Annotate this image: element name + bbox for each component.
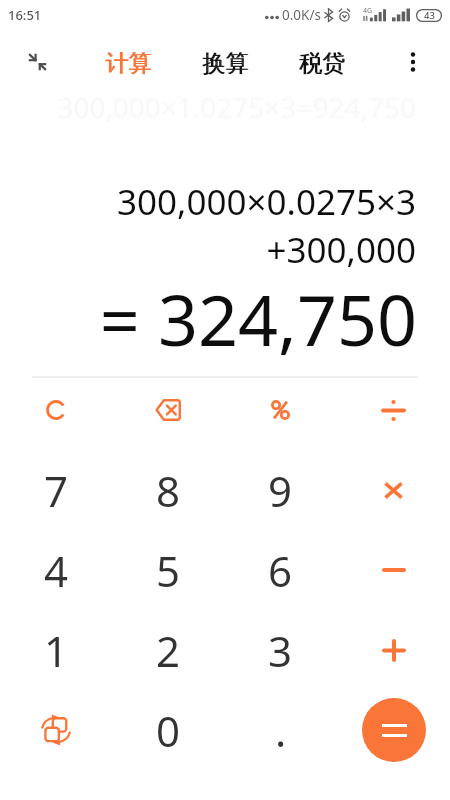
button[interactable]: 2: [112, 610, 224, 690]
staticText: 0.0K/s: [282, 6, 321, 24]
button[interactable]: Equals: [337, 690, 450, 770]
staticText: 换算: [202, 49, 248, 78]
staticText: 43: [424, 9, 435, 22]
staticText: 4G: [363, 6, 373, 16]
button[interactable]: 6: [224, 530, 337, 610]
staticText: = 324,750: [0, 271, 417, 366]
button[interactable]: 4: [0, 530, 112, 610]
staticText: 2: [156, 622, 181, 679]
button[interactable]: 换算: [200, 44, 250, 83]
button[interactable]: Percent: [224, 370, 337, 450]
staticText: 5: [156, 542, 181, 599]
button[interactable]: Divide: [337, 370, 450, 450]
button[interactable]: 8: [112, 450, 224, 530]
staticText: 3: [268, 622, 293, 679]
button[interactable]: Subtract: [337, 530, 450, 610]
staticText: 计算: [105, 49, 151, 78]
button[interactable]: Add: [337, 610, 450, 690]
button[interactable]: 税贷: [297, 44, 347, 83]
button[interactable]: Multiply: [337, 450, 450, 530]
button[interactable]: More options: [397, 46, 429, 78]
staticText: 9: [268, 462, 293, 519]
staticText: 税贷: [300, 49, 346, 78]
staticText: 1: [44, 622, 69, 679]
staticText: 7: [44, 462, 69, 519]
button[interactable]: Collapse: [21, 46, 53, 78]
button[interactable]: 计算: [103, 44, 153, 83]
staticText: 8: [156, 462, 181, 519]
staticText: 16:51: [8, 6, 42, 24]
button[interactable]: Clear: [0, 370, 112, 450]
button[interactable]: 9: [224, 450, 337, 530]
staticText: .: [275, 702, 287, 759]
button[interactable]: 3: [224, 610, 337, 690]
staticText: 换算: [203, 49, 249, 78]
button[interactable]: 5: [112, 530, 224, 610]
button[interactable]: 7: [0, 450, 112, 530]
staticText: 6: [268, 542, 293, 599]
button[interactable]: Backspace: [112, 370, 224, 450]
button[interactable]: .: [224, 690, 337, 770]
staticText: 0: [156, 702, 181, 759]
staticText: 300,000×0.0275×3 +300,000: [0, 178, 416, 273]
button[interactable]: 0: [112, 690, 224, 770]
button[interactable]: 1: [0, 610, 112, 690]
button[interactable]: Unit conversion: [0, 690, 112, 770]
staticText: 4: [44, 542, 69, 599]
staticText: 税贷: [299, 49, 345, 78]
staticText: 计算: [106, 49, 152, 78]
